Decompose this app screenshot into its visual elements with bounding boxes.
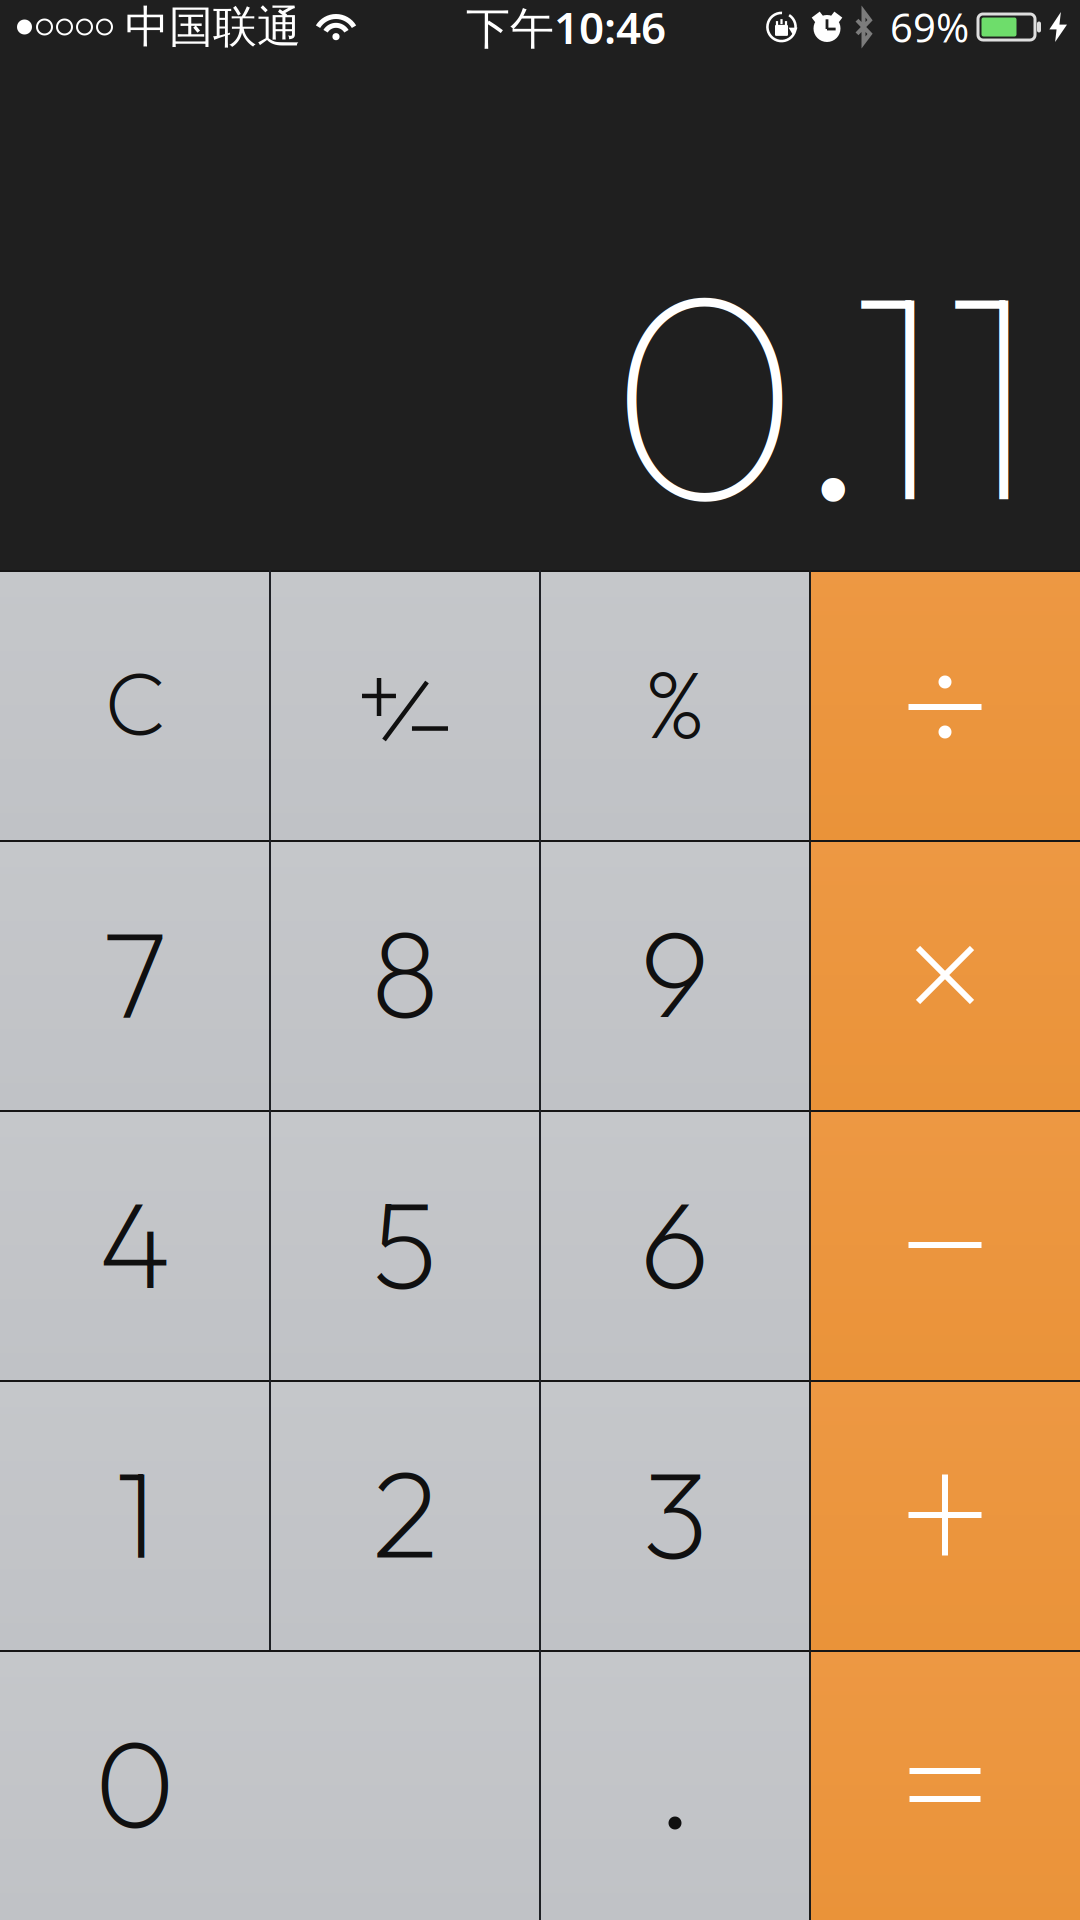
button[interactable]: 0 [0,1650,540,1920]
staticText: % [643,642,706,762]
button[interactable]: 8 [270,840,540,1110]
button[interactable]: 3 [540,1380,810,1650]
staticText: 3 [642,1435,707,1589]
button[interactable]: Clear [0,570,270,840]
button[interactable]: Minus [810,1110,1080,1380]
button[interactable]: 4 [0,1110,270,1380]
staticText: 0.11 [608,205,1036,575]
button[interactable]: 9 [540,840,810,1110]
button[interactable]: 2 [270,1380,540,1650]
button[interactable]: Equals [810,1650,1080,1920]
staticText: 69% [890,0,969,53]
button[interactable]: Plus [810,1380,1080,1650]
staticText: 7 [102,895,167,1049]
staticText: 4 [98,1165,171,1319]
staticText: 9 [640,895,710,1049]
staticText: 0 [94,1705,175,1859]
staticText: 6 [640,1165,710,1319]
staticText: 2 [372,1435,438,1589]
button[interactable]: 5 [270,1110,540,1380]
staticText: 5 [372,1165,438,1319]
staticText: 中国联通 [125,0,301,54]
button[interactable]: Percent [540,570,810,840]
staticText: C [104,647,165,757]
button[interactable]: 1 [0,1380,270,1650]
button[interactable]: 7 [0,840,270,1110]
staticText: 1 [115,1435,155,1589]
staticText: 下午10:46 [466,0,666,56]
staticText: 8 [371,895,439,1049]
button[interactable]: Decimal point [540,1650,810,1920]
button[interactable]: 6 [540,1110,810,1380]
button[interactable]: Plus minus [270,570,540,840]
button[interactable]: Divide [810,570,1080,840]
button[interactable]: Multiply [810,840,1080,1110]
